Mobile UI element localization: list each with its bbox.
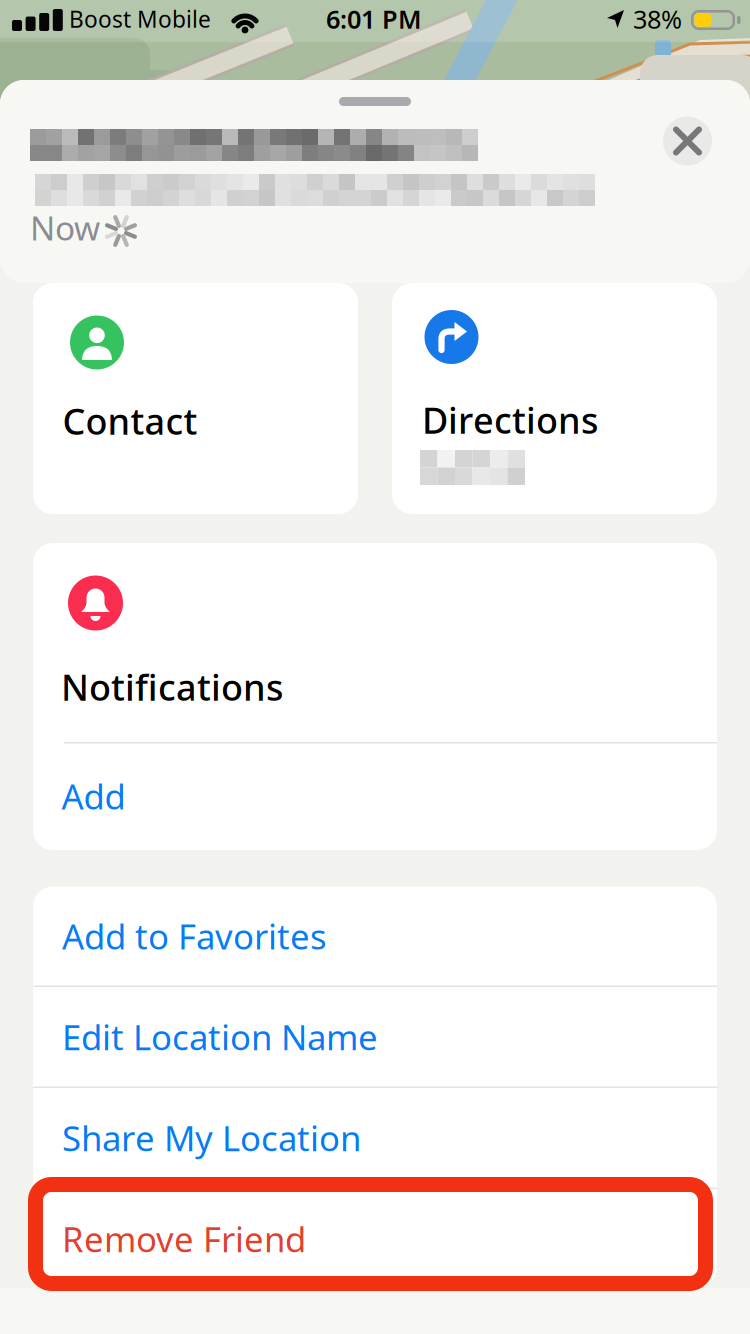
- button[interactable]: Remove Friend: [33, 1189, 717, 1288]
- staticText: Add to Favorites: [62, 913, 327, 959]
- staticText: Share My Location: [62, 1115, 361, 1161]
- button[interactable]: Add to Favorites: [33, 886, 717, 985]
- button[interactable]: Edit Location Name: [33, 987, 717, 1086]
- staticText: Contact: [62, 397, 197, 445]
- staticText: Now: [30, 205, 100, 250]
- staticText: Boost Mobile: [69, 4, 211, 34]
- button[interactable]: Contact: [33, 283, 358, 514]
- staticText: 6:01 PM: [326, 2, 422, 36]
- staticText: Directions: [422, 396, 598, 444]
- staticText: Notifications: [61, 663, 283, 711]
- staticText: 38%: [633, 2, 682, 36]
- staticText: Edit Location Name: [62, 1014, 378, 1060]
- button[interactable]: Share My Location: [33, 1088, 717, 1187]
- staticText: Add: [61, 773, 125, 819]
- staticText: Remove Friend: [62, 1216, 306, 1262]
- button[interactable]: Directions: [392, 283, 717, 514]
- button[interactable]: Add: [61, 746, 711, 846]
- button[interactable]: Close: [663, 116, 712, 165]
